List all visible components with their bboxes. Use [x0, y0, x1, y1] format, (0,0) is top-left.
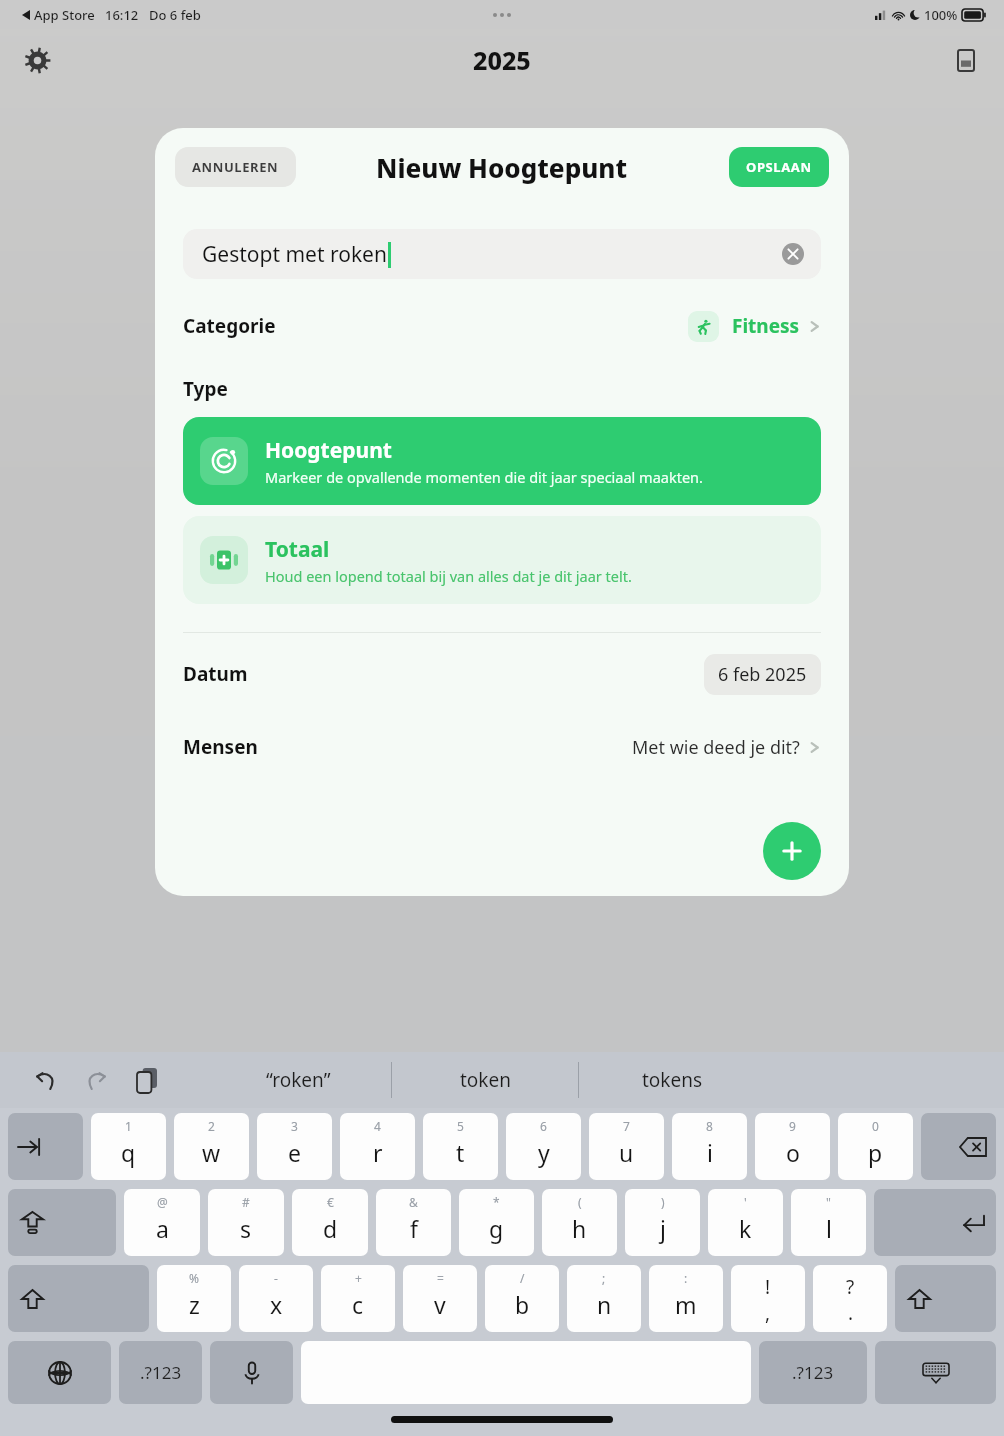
staticText: 6 feb 2025 — [718, 662, 807, 687]
staticText: + — [355, 1270, 362, 1286]
staticText: c — [352, 1289, 364, 1320]
staticText: - — [274, 1270, 278, 1286]
button[interactable]: p — [838, 1113, 913, 1180]
button[interactable]: e — [257, 1113, 332, 1180]
staticText: Markeer de opvallende momenten die dit j… — [265, 467, 703, 487]
button[interactable]: Dictation — [210, 1341, 293, 1404]
button[interactable]: a — [124, 1189, 200, 1256]
staticText: @ — [157, 1194, 168, 1210]
button[interactable]: Mensen — [155, 715, 849, 779]
staticText: Houd een lopend totaal bij van alles dat… — [265, 566, 632, 586]
staticText: u — [619, 1137, 634, 1168]
button[interactable]: h — [542, 1189, 617, 1256]
staticText: , — [765, 1300, 771, 1323]
button[interactable]: l — [791, 1189, 866, 1256]
button[interactable]: “roken” — [205, 1052, 391, 1108]
staticText: ! — [765, 1274, 771, 1300]
button[interactable]: token — [392, 1052, 578, 1108]
staticText: q — [121, 1137, 136, 1168]
button[interactable]: r — [340, 1113, 415, 1180]
staticText: 1 — [125, 1118, 132, 1134]
button[interactable]: Categorie — [155, 306, 849, 346]
button[interactable]: w — [174, 1113, 249, 1180]
button[interactable]: j — [625, 1189, 700, 1256]
staticText: " — [826, 1194, 831, 1210]
button[interactable]: o — [755, 1113, 830, 1180]
staticText: # — [242, 1194, 250, 1210]
button[interactable]: n — [567, 1265, 641, 1332]
button[interactable]: ! — [731, 1265, 805, 1332]
button[interactable]: Totaal — [183, 516, 821, 604]
staticText: 0 — [872, 1118, 879, 1134]
staticText: w — [202, 1137, 221, 1168]
button[interactable]: Gestopt met roken — [183, 229, 821, 279]
button[interactable]: .?123 — [119, 1341, 202, 1404]
staticText: Hoogtepunt — [265, 436, 392, 465]
button[interactable]: g — [459, 1189, 534, 1256]
button[interactable]: Tab — [8, 1113, 83, 1180]
staticText: & — [409, 1194, 418, 1210]
staticText: x — [270, 1289, 283, 1320]
staticText: Mensen — [183, 734, 258, 760]
button[interactable]: ANNULEREN — [175, 147, 296, 187]
button[interactable]: Caps lock — [8, 1189, 116, 1256]
button[interactable]: Widget — [944, 38, 988, 82]
staticText: ANNULEREN — [192, 158, 279, 176]
staticText: 3 — [291, 1118, 298, 1134]
button[interactable]: v — [403, 1265, 477, 1332]
button[interactable]: Paste — [128, 1061, 166, 1099]
button[interactable]: z — [157, 1265, 231, 1332]
button[interactable]: b — [485, 1265, 559, 1332]
button[interactable]: m — [649, 1265, 723, 1332]
button[interactable]: f — [376, 1189, 451, 1256]
button[interactable]: Hoogtepunt — [183, 417, 821, 505]
button[interactable]: Delete — [921, 1113, 996, 1180]
staticText: : — [684, 1270, 688, 1286]
button[interactable]: Clear text — [782, 243, 804, 265]
staticText: Type — [183, 376, 228, 402]
button[interactable]: Next keyboard — [8, 1341, 111, 1404]
button[interactable]: Undo — [26, 1061, 64, 1099]
staticText: l — [826, 1213, 832, 1244]
button[interactable]: c — [321, 1265, 395, 1332]
staticText: Do 6 feb — [149, 6, 201, 24]
button[interactable]: Shift — [8, 1265, 149, 1332]
button[interactable]: i — [672, 1113, 747, 1180]
staticText: tokens — [642, 1067, 703, 1093]
staticText: . — [848, 1300, 854, 1323]
button[interactable]: Add — [763, 822, 821, 880]
button[interactable]: x — [239, 1265, 313, 1332]
button[interactable]: Hide keyboard — [875, 1341, 996, 1404]
button[interactable]: Datum — [155, 633, 849, 715]
button[interactable]: OPSLAAN — [729, 147, 829, 187]
button[interactable]: ? — [813, 1265, 887, 1332]
staticText: t — [456, 1137, 465, 1168]
staticText: y — [538, 1137, 550, 1168]
staticText: OPSLAAN — [746, 158, 812, 176]
button[interactable]: Redo — [78, 1061, 116, 1099]
button[interactable]: Return — [874, 1189, 996, 1256]
button[interactable]: y — [506, 1113, 581, 1180]
staticText: m — [675, 1289, 697, 1320]
staticText: = — [437, 1270, 444, 1286]
staticText: b — [515, 1289, 530, 1320]
button[interactable]: .?123 — [759, 1341, 867, 1404]
button[interactable]: t — [423, 1113, 498, 1180]
staticText: j — [660, 1213, 666, 1244]
staticText: 5 — [457, 1118, 464, 1134]
staticText: Datum — [183, 661, 248, 687]
staticText: 7 — [623, 1118, 630, 1134]
staticText: p — [868, 1137, 883, 1168]
button[interactable]: k — [708, 1189, 783, 1256]
button[interactable]: u — [589, 1113, 664, 1180]
button[interactable]: tokens — [579, 1052, 765, 1108]
staticText: Gestopt met roken — [202, 240, 387, 269]
button[interactable]: Shift — [895, 1265, 996, 1332]
button[interactable]: q — [91, 1113, 166, 1180]
button[interactable]: s — [208, 1189, 284, 1256]
staticText: r — [373, 1137, 383, 1168]
staticText: d — [323, 1213, 338, 1244]
button[interactable]: d — [292, 1189, 368, 1256]
button[interactable]: Settings — [14, 37, 60, 83]
